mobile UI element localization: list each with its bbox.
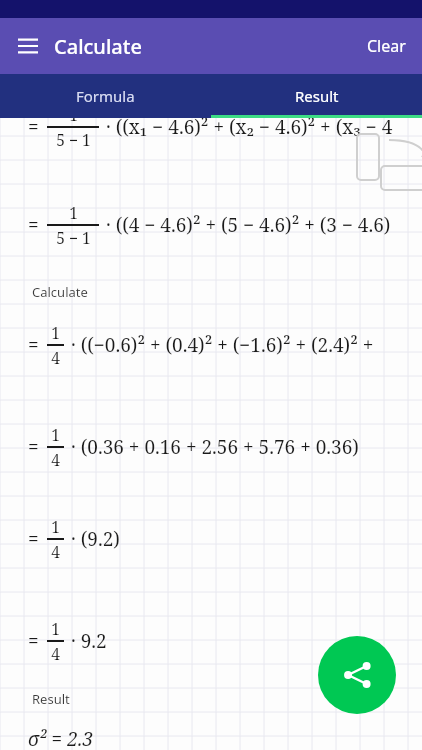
staticText: 1 xyxy=(51,618,60,639)
staticText: · ((4 − 4.6)² + (5 − 4.6)² + (3 − 4.6) xyxy=(106,212,391,238)
button[interactable]: Formula xyxy=(0,74,211,118)
staticText: 5 − 1 xyxy=(56,129,91,150)
staticText: Result xyxy=(295,86,339,106)
button[interactable]: Open navigation menu xyxy=(10,28,46,64)
staticText: 1 xyxy=(69,104,78,125)
staticText: Clear xyxy=(367,35,406,57)
staticText: 1 xyxy=(51,424,60,445)
staticText: Calculate xyxy=(32,283,88,301)
staticText: Formula xyxy=(76,86,135,106)
staticText: = xyxy=(28,114,39,140)
staticText: = xyxy=(28,526,39,552)
staticText: 4 xyxy=(51,541,60,562)
staticText: σ² = 2.3 xyxy=(28,726,94,750)
button[interactable]: Share xyxy=(318,636,396,714)
staticText: · 9.2 xyxy=(71,628,107,654)
staticText: 1 xyxy=(69,202,78,223)
staticText: = xyxy=(28,212,39,238)
staticText: 1 xyxy=(51,322,60,343)
staticText: = xyxy=(28,332,39,358)
staticText: 4 xyxy=(51,449,60,470)
staticText: · ((−0.6)² + (0.4)² + (−1.6)² + (2.4)² + xyxy=(71,332,374,358)
staticText: = xyxy=(28,628,39,654)
staticText: Result xyxy=(32,690,70,708)
staticText: 1 xyxy=(51,516,60,537)
staticText: = xyxy=(28,434,39,460)
staticText: Calculate xyxy=(54,33,142,60)
staticText: · (9.2) xyxy=(71,526,120,552)
other: Scroll horizontally hint xyxy=(355,126,405,172)
button[interactable]: Result xyxy=(211,74,422,118)
staticText: · ((x₁ − 4.6)² + (x₂ − 4.6)² + (x₃ − 4 xyxy=(106,114,393,140)
button[interactable]: Clear xyxy=(351,25,422,67)
staticText: 4 xyxy=(51,347,60,368)
staticText: 5 − 1 xyxy=(56,227,91,248)
staticText: · (0.36 + 0.16 + 2.56 + 5.76 + 0.36) xyxy=(71,434,359,460)
staticText: 4 xyxy=(51,643,60,664)
